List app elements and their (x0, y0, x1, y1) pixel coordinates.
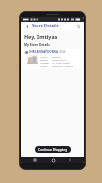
staticText: Address (40, 61, 52, 64)
staticText: Mobile (40, 58, 52, 61)
staticText: (104) (59, 50, 66, 54)
staticText: My Store Details (24, 43, 50, 47)
staticText: Continue Shopping (38, 148, 68, 152)
button[interactable]: Home (50, 157, 56, 163)
button[interactable]: Continue Shopping (35, 146, 71, 153)
staticText: 9XXXX XXXXX (52, 58, 68, 61)
button[interactable]: Cart (75, 23, 81, 29)
staticText: 12, Main Street, Chennai (52, 61, 80, 64)
button[interactable]: SHRI ANNAPOORNA (23, 49, 82, 69)
staticText: SHRI ANNAPOORNA (29, 50, 58, 54)
button[interactable]: Back (24, 23, 30, 29)
staticText: Hey, Imtiyas (24, 33, 58, 40)
staticText: Imtiyas (52, 55, 61, 58)
staticText: #100245 - 2 items (52, 64, 73, 67)
button[interactable]: Recents (32, 157, 38, 163)
staticText: Store Details (32, 23, 59, 29)
staticText: Name (40, 55, 52, 58)
staticText: Order (40, 64, 52, 67)
button[interactable]: Back (67, 157, 73, 163)
